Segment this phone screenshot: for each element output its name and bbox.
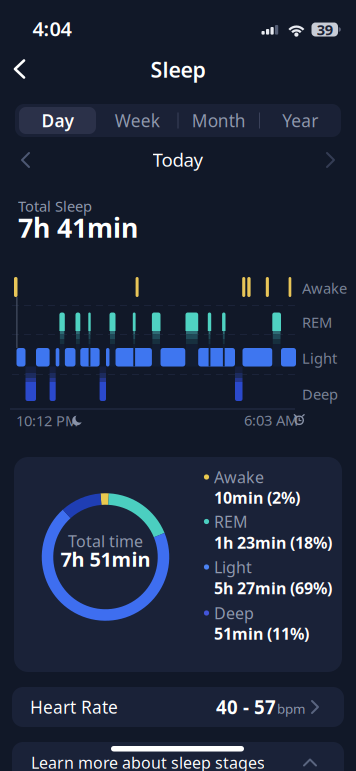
staticText: bpm: [277, 700, 305, 717]
staticText: Awake: [214, 466, 264, 488]
staticText: 10min (2%): [214, 487, 300, 508]
button[interactable]: Year: [260, 104, 340, 137]
button[interactable]: Learn more about sleep stages: [12, 742, 344, 771]
button[interactable]: [0, 0, 356, 771]
button[interactable]: Month: [179, 104, 259, 137]
staticText: Day: [41, 109, 73, 132]
staticText: REM: [214, 511, 248, 532]
button[interactable]: [0, 0, 356, 771]
staticText: Sleep: [150, 55, 205, 84]
staticText: 7h 51min: [60, 546, 150, 572]
button[interactable]: [0, 0, 356, 771]
button[interactable]: Week: [97, 104, 177, 137]
staticText: Awake: [302, 278, 347, 298]
staticText: Light: [214, 556, 252, 578]
staticText: Year: [282, 109, 318, 132]
staticText: Learn more about sleep stages: [31, 752, 265, 771]
staticText: Light: [302, 348, 337, 368]
staticText: Total time: [68, 530, 143, 552]
staticText: 51min (11%): [214, 623, 309, 644]
staticText: 7h 41min: [18, 210, 138, 245]
staticText: 40 - 57: [216, 695, 276, 719]
staticText: 39: [317, 20, 333, 39]
staticText: Deep: [214, 602, 254, 624]
staticText: Heart Rate: [30, 695, 118, 718]
staticText: 4:04: [32, 15, 71, 42]
staticText: 5h 27min (69%): [214, 577, 332, 599]
staticText: 10:12 PM: [16, 411, 78, 430]
staticText: Today: [152, 147, 203, 172]
staticText: Week: [115, 109, 160, 132]
staticText: Total Sleep: [18, 196, 92, 216]
staticText: Month: [192, 109, 246, 132]
staticText: 6:03 AM: [244, 410, 298, 430]
staticText: 1h 23min (18%): [214, 532, 332, 553]
button[interactable]: Day: [19, 107, 96, 134]
button[interactable]: Heart Rate: [12, 687, 344, 727]
staticText: Deep: [302, 384, 338, 404]
staticText: REM: [302, 312, 332, 332]
